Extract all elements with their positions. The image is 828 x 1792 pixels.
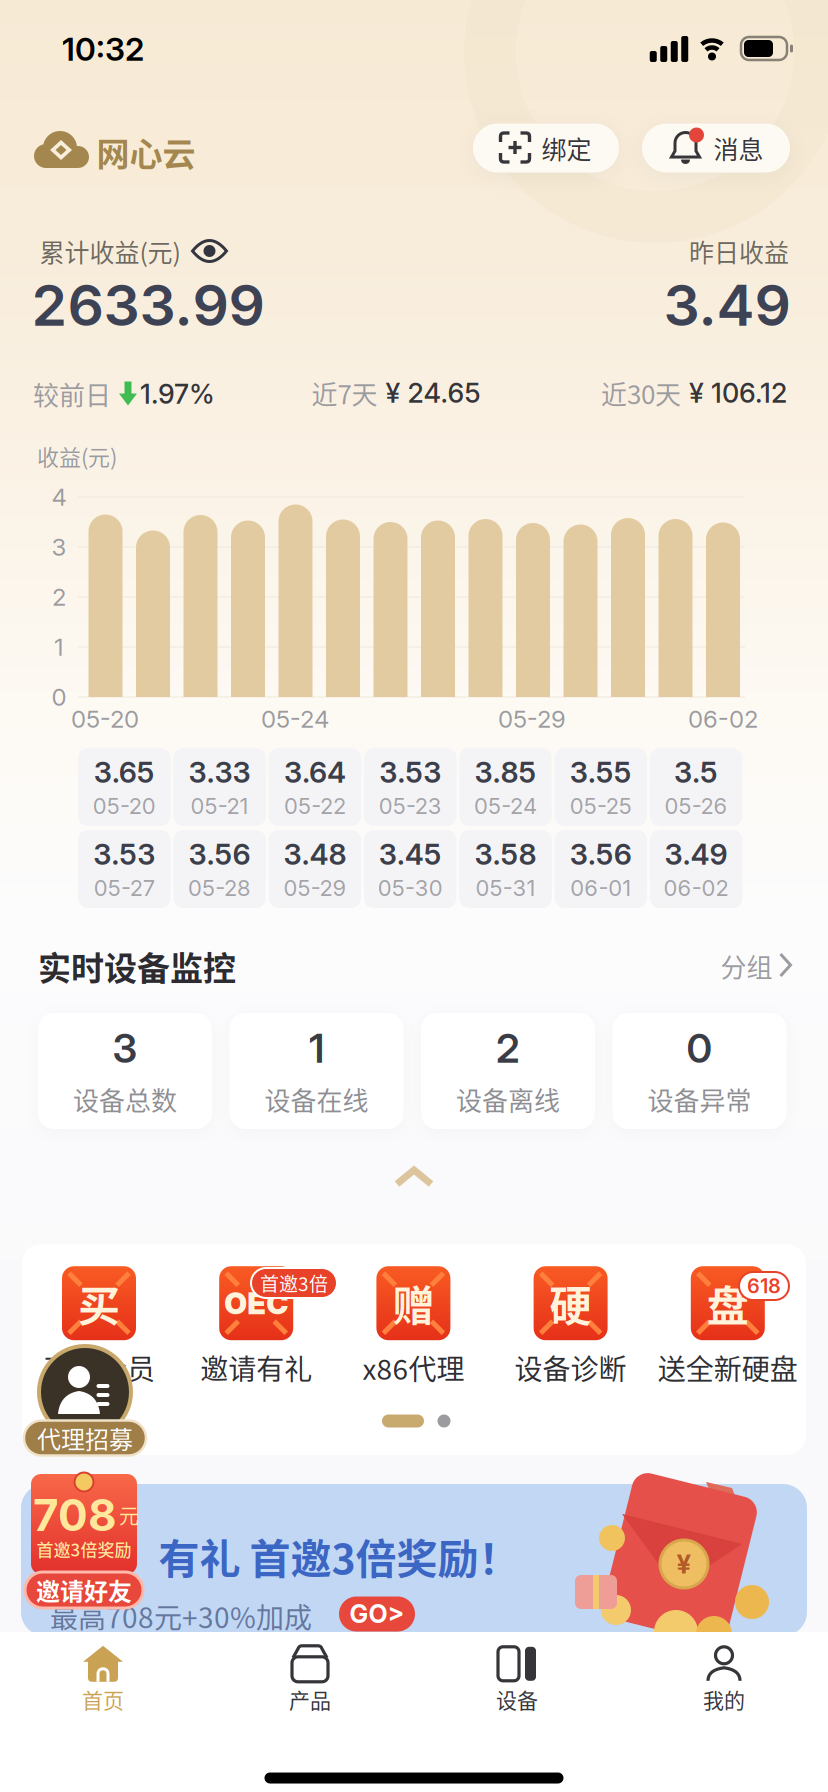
staticText: 3.85: [474, 755, 536, 790]
staticText: 邀请有礼: [200, 1347, 312, 1388]
staticText: 05-20: [71, 704, 139, 733]
button[interactable]: 3: [38, 1013, 212, 1129]
button[interactable]: 0: [612, 1013, 786, 1129]
staticText: 3.58: [474, 837, 536, 872]
staticText: 05-29: [498, 704, 566, 733]
button[interactable]: 消息: [642, 123, 790, 172]
staticText: 0: [51, 682, 66, 711]
staticText: 设备诊断: [515, 1347, 627, 1388]
staticText: 买: [78, 1273, 120, 1334]
button[interactable]: 赠: [362, 1266, 464, 1388]
staticText: 收益(元): [37, 440, 117, 472]
staticText: 10:32: [62, 30, 144, 68]
staticText: 2: [496, 1024, 520, 1072]
button[interactable]: 盘: [658, 1266, 798, 1388]
staticText: 绑定: [541, 130, 591, 166]
staticText: 首邀3倍奖励: [36, 1537, 131, 1561]
staticText: 3: [112, 1024, 137, 1072]
staticText: 设备离线: [456, 1080, 560, 1118]
staticText: 05-29: [283, 875, 346, 901]
staticText: 设备在线: [264, 1080, 368, 1118]
staticText: 06-01: [570, 875, 631, 901]
button[interactable]: 设备: [496, 1646, 538, 1714]
staticText: 1: [54, 632, 64, 661]
staticText: 3.56: [570, 837, 632, 872]
button[interactable]: 邀请好友: [0, 0, 828, 1792]
staticText: 1: [309, 1024, 324, 1072]
staticText: 618: [747, 1274, 781, 1298]
staticText: 3.53: [93, 837, 155, 872]
staticText: ¥: [676, 1548, 691, 1580]
staticText: 设备异常: [647, 1080, 751, 1118]
staticText: 05-28: [188, 875, 251, 901]
staticText: 05-27: [94, 875, 155, 901]
staticText: 首页: [82, 1684, 124, 1714]
staticText: 送全新硬盘: [658, 1347, 798, 1388]
staticText: 3.5: [674, 755, 718, 790]
staticText: 3.65: [94, 755, 155, 790]
staticText: 首邀3倍: [260, 1269, 328, 1297]
staticText: ¥ 24.65: [385, 377, 480, 409]
staticText: 05-21: [191, 793, 249, 819]
button[interactable]: 分组: [720, 947, 793, 985]
staticText: 3.53: [379, 755, 441, 790]
staticText: 元: [119, 1500, 139, 1529]
staticText: 较前日: [33, 375, 117, 413]
button[interactable]: 硬: [515, 1266, 627, 1388]
staticText: 累计收益(元): [39, 233, 180, 269]
staticText: 代理招募: [37, 1421, 133, 1455]
staticText: 05-31: [475, 875, 535, 901]
staticText: 05-24: [261, 704, 329, 733]
staticText: 06-02: [664, 875, 729, 901]
button[interactable]: 绑定: [473, 123, 619, 172]
staticText: 网心云: [96, 128, 195, 176]
staticText: 3.33: [189, 755, 251, 790]
staticText: 3.56: [189, 837, 251, 872]
staticText: 05-25: [570, 793, 632, 819]
staticText: 2633.99: [31, 270, 264, 339]
staticText: 1.97%: [140, 378, 215, 410]
staticText: x86代理: [362, 1347, 464, 1388]
staticText: 有礼 首邀3倍奖励！: [158, 1526, 519, 1586]
button[interactable]: 我的: [703, 1646, 745, 1714]
staticText: 分组: [720, 947, 772, 985]
staticText: 设备: [496, 1684, 538, 1714]
staticText: 开通会员: [43, 1347, 155, 1388]
staticText: ¥ 106.12: [689, 377, 787, 409]
button[interactable]: 买: [43, 1266, 155, 1388]
staticText: 3.64: [284, 755, 346, 790]
button[interactable]: 有礼 首邀3倍奖励！: [21, 1484, 807, 1636]
staticText: OEC: [224, 1285, 288, 1321]
staticText: 产品: [289, 1684, 331, 1714]
staticText: 3.49: [663, 270, 790, 339]
staticText: 邀请好友: [36, 1573, 132, 1607]
button[interactable]: 代理招募: [0, 0, 828, 1792]
staticText: 708: [33, 1488, 117, 1542]
button[interactable]: 收起: [397, 1170, 431, 1186]
button[interactable]: OEC: [200, 1266, 312, 1388]
staticText: 05-26: [665, 793, 728, 819]
staticText: 2: [52, 582, 66, 611]
staticText: 05-20: [93, 793, 156, 819]
staticText: 3: [51, 532, 66, 561]
staticText: 近30天: [601, 374, 681, 412]
staticText: 3.55: [570, 755, 632, 790]
staticText: 3.45: [379, 837, 442, 872]
staticText: 4: [51, 482, 66, 511]
button[interactable]: 2: [421, 1013, 595, 1129]
staticText: 盘: [707, 1273, 749, 1334]
staticText: 昨日收益: [689, 233, 789, 269]
staticText: 消息: [713, 130, 763, 166]
staticText: 最高708元+30%加成: [50, 1596, 312, 1636]
button[interactable]: 1: [229, 1013, 403, 1129]
staticText: 实时设备监控: [38, 942, 236, 990]
staticText: 05-24: [474, 793, 537, 819]
button[interactable]: 产品: [289, 1646, 331, 1714]
staticText: 硬: [550, 1273, 592, 1334]
staticText: 赠: [392, 1273, 434, 1334]
staticText: 近7天: [311, 374, 377, 412]
staticText: 设备总数: [73, 1080, 177, 1118]
staticText: 06-02: [688, 704, 758, 733]
staticText: 05-22: [284, 793, 346, 819]
button[interactable]: 首页: [82, 1646, 124, 1714]
